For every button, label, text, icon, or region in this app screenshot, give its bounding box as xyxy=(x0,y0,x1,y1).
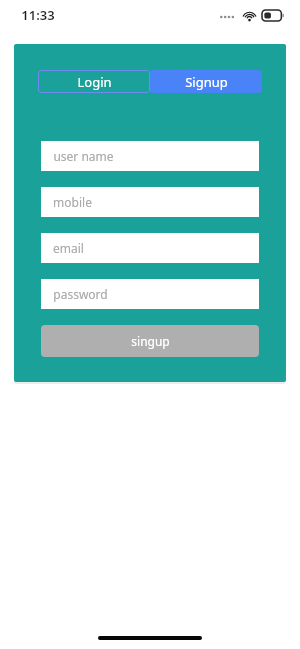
button[interactable]: email xyxy=(41,233,259,263)
button[interactable]: Signup xyxy=(150,70,262,93)
staticText: password xyxy=(53,286,108,302)
button[interactable]: password xyxy=(41,279,259,309)
button[interactable]: mobile xyxy=(41,187,259,217)
staticText: email xyxy=(53,240,84,256)
staticText: Signup xyxy=(185,73,228,91)
staticText: 11:33 xyxy=(21,6,55,24)
staticText: Login xyxy=(77,73,112,91)
button[interactable]: Login xyxy=(38,70,150,93)
button[interactable]: user name xyxy=(41,141,259,171)
staticText: user name xyxy=(53,148,114,164)
button[interactable]: singup xyxy=(41,325,259,357)
other: Home indicator xyxy=(98,636,202,640)
staticText: mobile xyxy=(53,194,92,210)
staticText: singup xyxy=(131,333,170,349)
